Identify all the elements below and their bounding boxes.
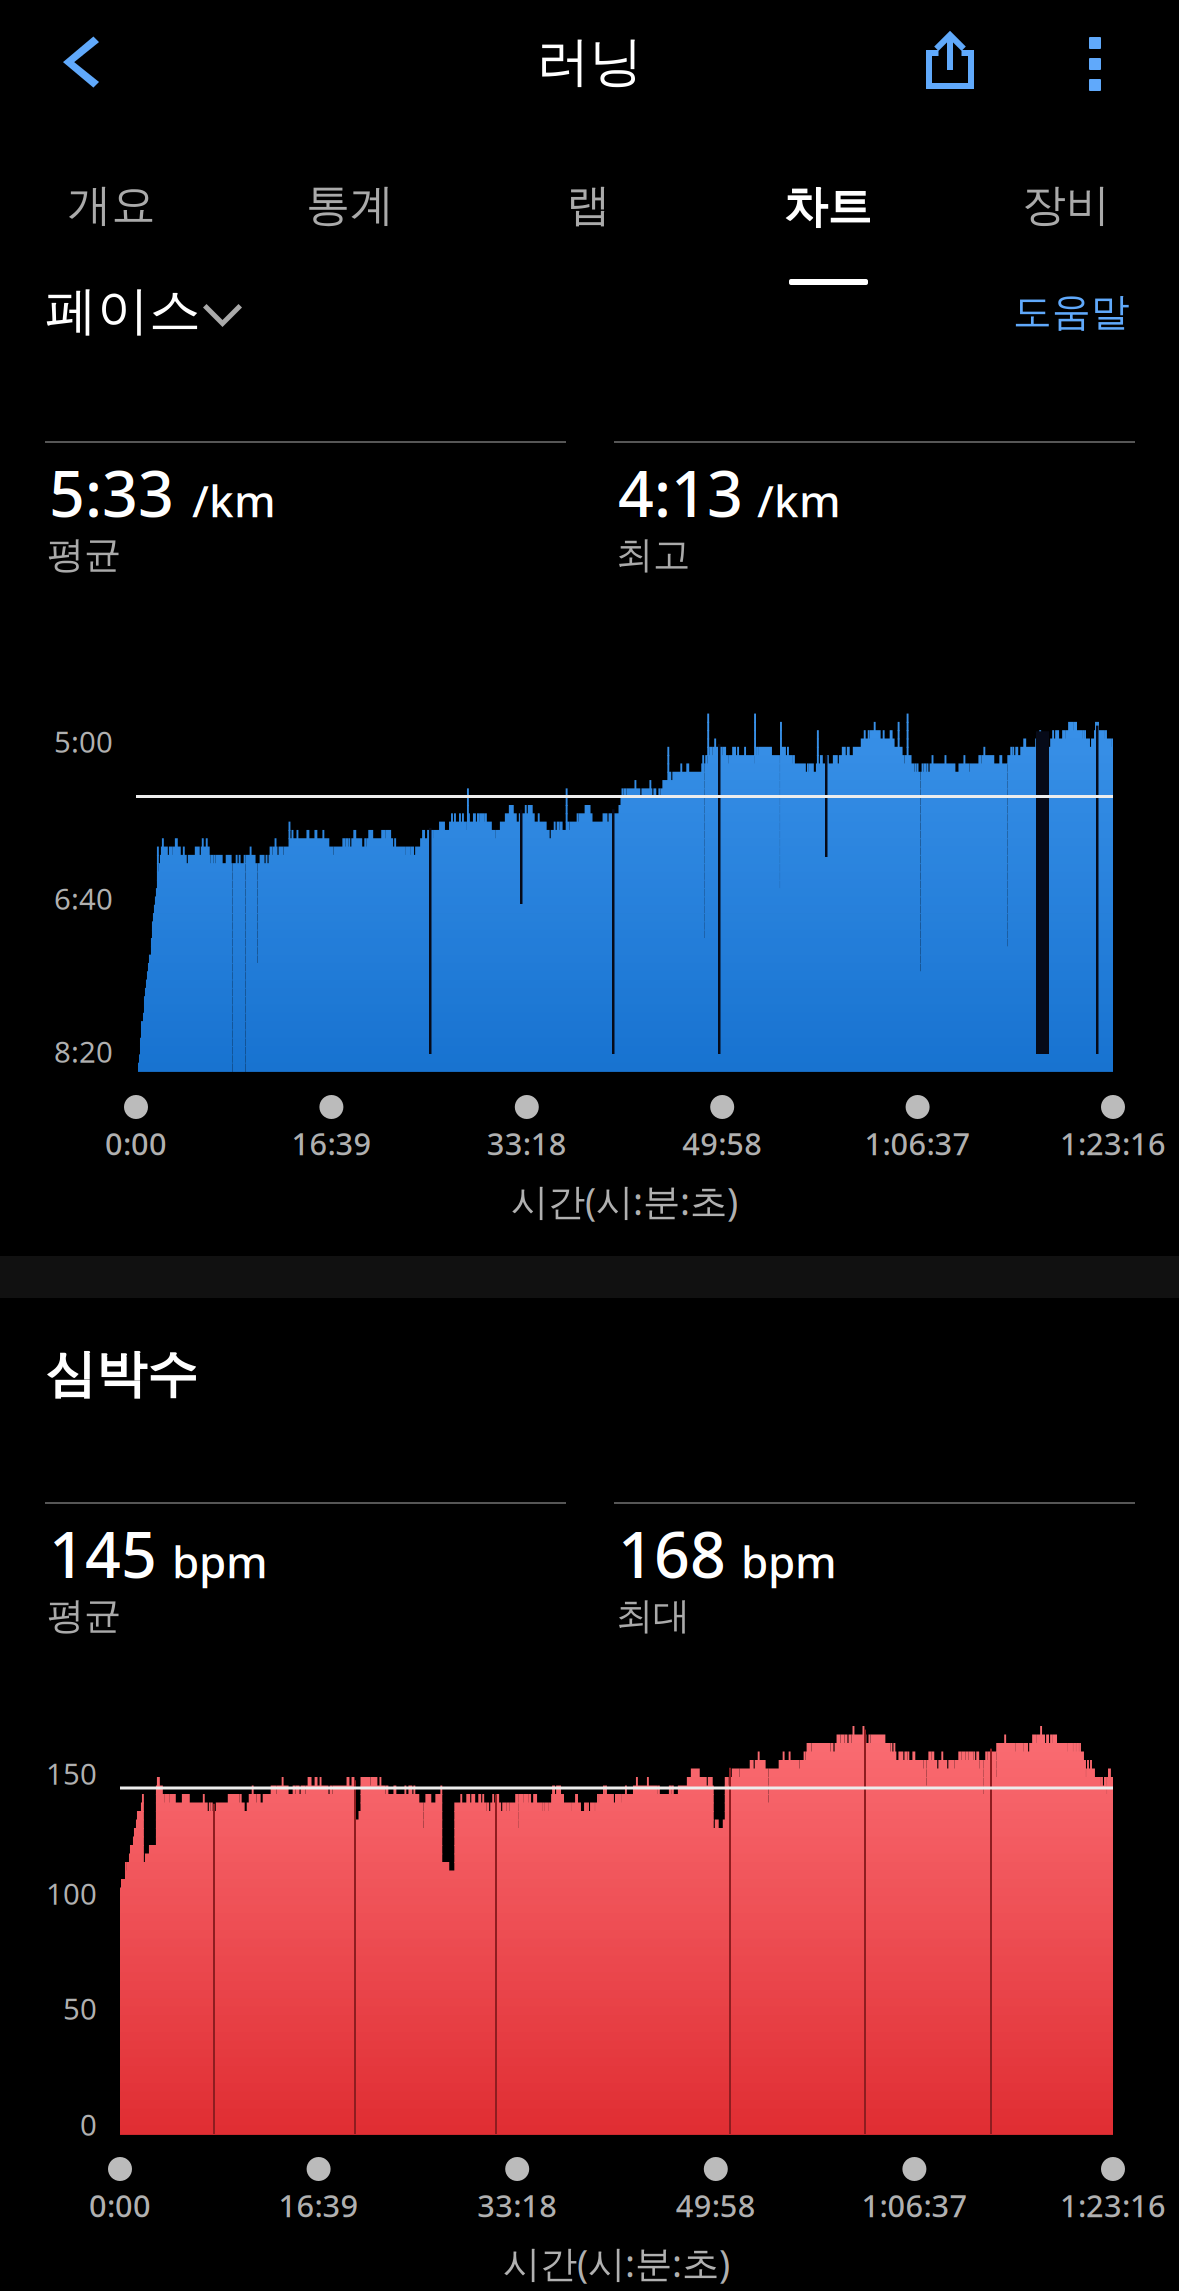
staticText: 49:58 <box>676 2185 756 2226</box>
staticText: 시간(시:분:초) <box>511 1176 738 1226</box>
staticText: 시간(시:분:초) <box>503 2238 730 2288</box>
staticText: 8:20 <box>54 1032 113 1071</box>
staticText: 33:18 <box>477 2185 557 2226</box>
staticText: 장비 <box>1022 178 1110 232</box>
staticText: 1:06:37 <box>861 2185 967 2226</box>
staticText: 심박수 <box>45 1343 198 1405</box>
button[interactable]: 차트 <box>708 153 946 261</box>
staticText: 평균 <box>47 1593 121 1639</box>
staticText: 0 <box>80 2105 97 2144</box>
staticText: 평균 <box>47 532 121 578</box>
button[interactable]: 개요 <box>0 151 231 259</box>
staticText: 차트 <box>783 180 871 234</box>
staticText: 6:40 <box>54 879 113 918</box>
staticText: 도움말 <box>1013 288 1130 336</box>
staticText: 개요 <box>68 178 156 232</box>
staticText: /km <box>757 471 841 529</box>
staticText: 1:23:16 <box>1060 2185 1166 2226</box>
staticText: 최대 <box>616 1593 690 1639</box>
staticText: bpm <box>172 1532 268 1590</box>
staticText: 랩 <box>566 178 610 232</box>
staticText: 33:18 <box>487 1123 567 1164</box>
button[interactable]: More options <box>1042 3 1148 125</box>
staticText: 5:33 <box>49 451 174 534</box>
staticText: 4:13 <box>618 451 743 534</box>
staticText: 1:23:16 <box>1060 1123 1166 1164</box>
button[interactable]: 도움말 <box>970 276 1130 348</box>
staticText: 50 <box>63 1989 97 2028</box>
staticText: 168 <box>618 1512 726 1595</box>
button[interactable]: 랩 <box>469 151 707 259</box>
staticText: 100 <box>46 1874 97 1913</box>
staticText: bpm <box>741 1532 837 1590</box>
button[interactable]: 페이스 <box>45 279 295 345</box>
button[interactable]: Back <box>20 1 142 123</box>
staticText: 16:39 <box>279 2185 359 2226</box>
button[interactable]: Share <box>891 0 1009 120</box>
staticText: 0:00 <box>89 2185 151 2226</box>
staticText: 145 <box>49 1512 157 1595</box>
staticText: /km <box>192 471 276 529</box>
staticText: 1:06:37 <box>865 1123 971 1164</box>
staticText: 페이스 <box>45 279 201 343</box>
staticText: 150 <box>46 1754 97 1793</box>
button[interactable]: 장비 <box>947 151 1179 259</box>
staticText: 5:00 <box>54 722 113 761</box>
staticText: 통계 <box>306 178 394 232</box>
staticText: 49:58 <box>682 1123 762 1164</box>
staticText: 러닝 <box>536 29 642 94</box>
staticText: 0:00 <box>105 1123 167 1164</box>
button[interactable]: 통계 <box>231 151 469 259</box>
staticText: 최고 <box>616 532 690 578</box>
staticText: 16:39 <box>291 1123 371 1164</box>
